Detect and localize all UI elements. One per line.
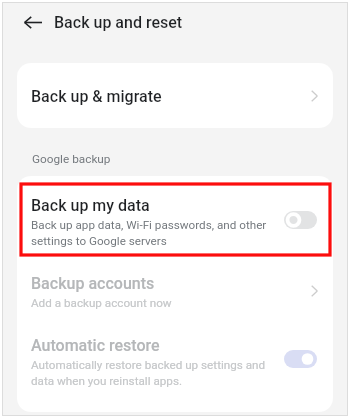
staticText: Automatic restore — [31, 336, 160, 355]
staticText: Add a backup account now — [31, 296, 172, 310]
button[interactable]: Back — [18, 7, 48, 37]
staticText: Back up app data, Wi-Fi passwords, and o… — [31, 218, 267, 248]
button[interactable]: Backup accounts — [17, 258, 333, 330]
staticText: Backup accounts — [31, 274, 155, 293]
staticText: Automatically restore backed up settings… — [31, 358, 266, 388]
button[interactable]: Back up & migrate — [17, 63, 333, 128]
staticText: Google backup — [32, 152, 111, 166]
staticText: Back up & migrate — [31, 87, 162, 106]
button[interactable]: Back up my data — [17, 176, 333, 258]
button[interactable]: Automatic restore — [17, 330, 333, 412]
button[interactable]: Back up my data off — [284, 211, 317, 229]
staticText: Back up my data — [31, 196, 150, 215]
staticText: Back up and reset — [54, 13, 183, 32]
button[interactable]: Automatic restore on — [284, 350, 317, 368]
